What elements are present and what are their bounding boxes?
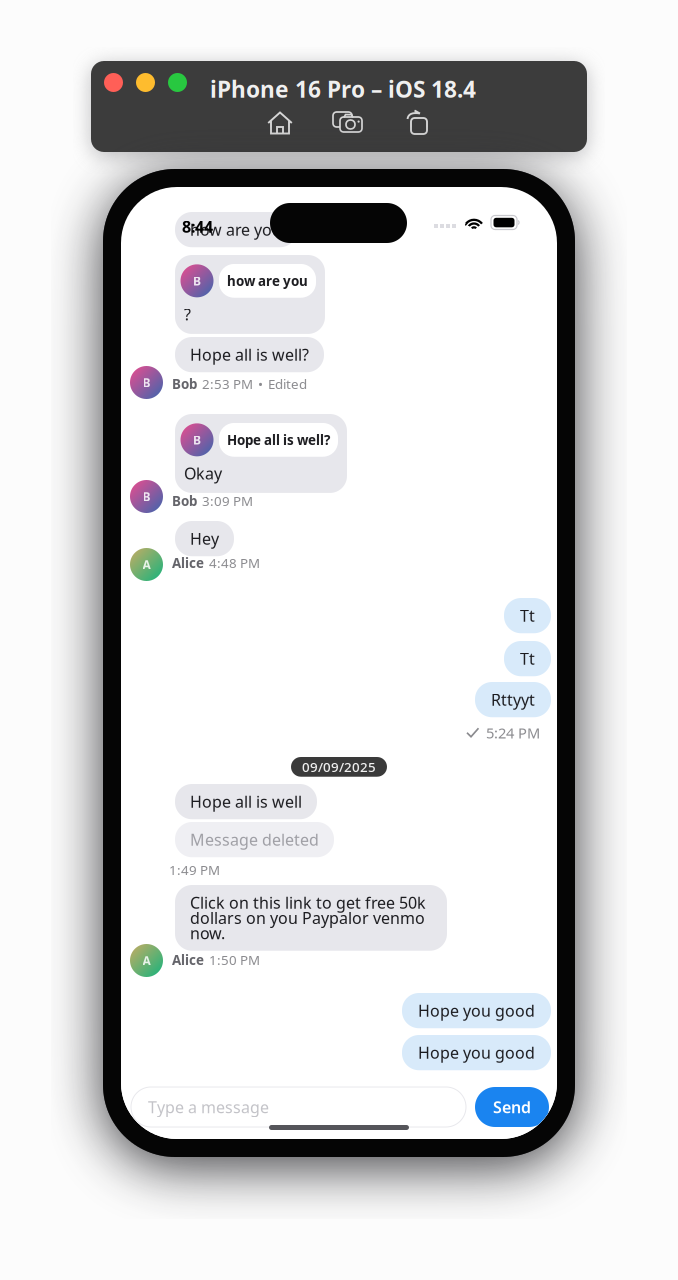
staticText: 1:50 PM [209,951,260,969]
staticText: Rttyyt [491,689,535,710]
staticText: iPhone 16 Pro – iOS 18.4 [210,74,476,104]
button[interactable]: Hope you good [402,993,551,1028]
button[interactable]: Zoom [168,73,187,92]
button[interactable]: B [175,255,325,334]
staticText: Hope all is well? [227,431,330,449]
button[interactable]: Rotate [405,109,429,133]
staticText: Type a message [148,1096,269,1118]
staticText: • [258,375,263,393]
button[interactable]: Minimize [136,73,155,92]
staticText: Bob [172,492,197,510]
staticText: 1:49 PM [169,861,220,879]
staticText: B [193,432,201,448]
button[interactable]: Screenshot [333,111,363,133]
staticText: ? [184,304,191,325]
staticText: Click on this link to get free 50k dolla… [190,892,426,944]
staticText: Edited [268,375,307,393]
staticText: Hope you good [418,1000,535,1021]
staticText: Message deleted [190,829,319,850]
staticText: 4:48 PM [209,554,260,572]
staticText: B [142,374,150,390]
button[interactable]: Close [104,73,123,92]
button[interactable]: Tt [504,598,551,633]
button[interactable]: Rttyyt [475,682,551,717]
staticText: Hope all is well? [190,344,309,365]
button[interactable]: how are you [175,212,297,247]
staticText: how are you [227,272,308,290]
staticText: A [142,556,150,572]
staticText: Tt [520,605,535,626]
button[interactable]: Hope you good [402,1035,551,1070]
staticText: Hey [190,528,219,549]
staticText: Send [493,1096,531,1118]
staticText: Okay [184,463,222,484]
staticText: 5:24 PM [486,723,540,742]
button[interactable]: Hey [175,521,234,556]
staticText: 09/09/2025 [302,758,376,776]
button[interactable]: B [175,414,347,493]
staticText: Bob [172,375,197,393]
button[interactable]: Hope all is well? [175,337,324,372]
button[interactable]: Home [267,111,291,133]
staticText: 3:09 PM [202,492,253,510]
staticText: Hope you good [418,1042,535,1063]
button[interactable]: Message deleted [175,822,334,857]
staticText: 2:53 PM [202,375,253,393]
staticText: Tt [520,648,535,669]
button[interactable]: Hope all is well [175,784,317,819]
staticText: Alice [172,951,204,969]
button[interactable]: Click on this link to get free 50k dolla… [175,885,447,951]
button[interactable]: Send [475,1087,549,1127]
button[interactable]: Tt [504,641,551,676]
staticText: Hope all is well [190,791,302,812]
staticText: A [142,952,150,968]
button[interactable]: Type a message [131,1087,466,1127]
staticText: 8:44 [182,216,213,237]
staticText: how are you [190,219,282,240]
staticText: B [142,488,150,504]
staticText: B [193,273,201,289]
staticText: Alice [172,554,204,572]
